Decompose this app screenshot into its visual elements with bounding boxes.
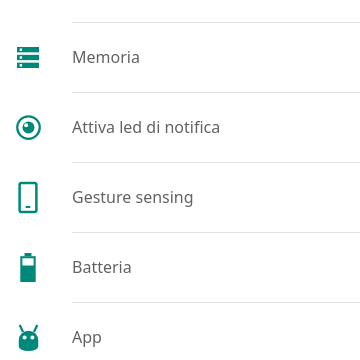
- button[interactable]: Memoria: [0, 22, 360, 92]
- staticText: Gesture sensing: [72, 186, 194, 208]
- other: Gesture sensing: [16, 183, 40, 212]
- staticText: Batteria: [72, 256, 132, 278]
- other: Batteria: [17, 253, 39, 282]
- button[interactable]: Batteria: [0, 232, 360, 302]
- other: Memoria: [17, 47, 39, 68]
- other: App: [16, 324, 41, 351]
- other: Notification LED: [16, 115, 41, 140]
- staticText: App: [72, 326, 102, 348]
- button[interactable]: Gesture sensing: [0, 162, 360, 232]
- staticText: Attiva led di notifica: [72, 116, 221, 138]
- button[interactable]: Notification LED: [0, 92, 360, 162]
- staticText: Memoria: [72, 46, 140, 68]
- button[interactable]: App: [0, 302, 360, 360]
